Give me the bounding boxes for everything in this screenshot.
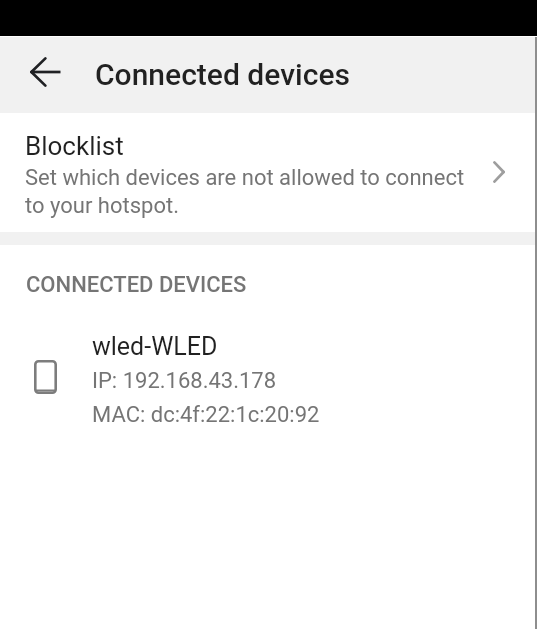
staticText: Set which devices are not allowed to con… bbox=[25, 165, 465, 218]
staticText: MAC: dc:4f:22:1c:20:92 bbox=[92, 402, 320, 428]
staticText: CONNECTED DEVICES bbox=[26, 272, 247, 298]
staticText: Blocklist bbox=[25, 131, 124, 161]
button[interactable]: wled-WLED bbox=[0, 330, 537, 436]
staticText: IP: 192.168.43.178 bbox=[92, 368, 277, 394]
button[interactable]: Back bbox=[22, 49, 68, 95]
staticText: Connected devices bbox=[95, 57, 351, 92]
staticText: wled-WLED bbox=[92, 332, 218, 361]
button[interactable]: Blocklist bbox=[0, 113, 537, 232]
